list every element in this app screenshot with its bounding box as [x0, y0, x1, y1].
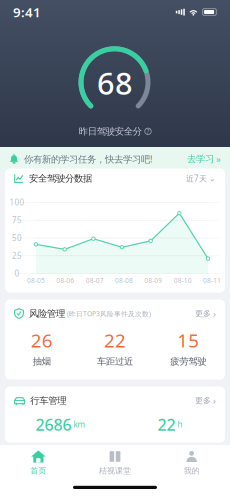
staticText: ›: [213, 307, 216, 320]
staticText: 22: [104, 328, 126, 353]
staticText: 2686: [35, 414, 71, 435]
button[interactable]: 22: [78, 328, 152, 367]
staticText: 首页: [30, 466, 46, 476]
staticText: 车距过近: [97, 356, 133, 367]
staticText: 0: [14, 268, 19, 279]
staticText: 我的: [184, 466, 200, 476]
staticText: 100: [9, 197, 24, 208]
staticText: 桔视课堂: [99, 466, 131, 476]
staticText: 近7天: [186, 173, 207, 184]
staticText: 抽烟: [33, 356, 51, 367]
staticText: (昨日TOP3风险事件及次数): [67, 309, 151, 318]
staticText: 你有新的学习任务，快去学习吧!: [24, 153, 153, 165]
staticText: 08-07: [86, 276, 104, 285]
staticText: 9:41: [13, 3, 41, 21]
button[interactable]: 15: [152, 328, 225, 367]
staticText: 08-11: [203, 276, 221, 285]
button[interactable]: 首页: [0, 450, 77, 476]
staticText: 08-10: [174, 276, 192, 285]
staticText: ⌄: [209, 174, 216, 183]
button[interactable]: 你有新的学习任务，快去学习吧!: [0, 147, 230, 171]
staticText: h: [177, 419, 182, 430]
staticText: ›: [213, 394, 216, 407]
staticText: km: [73, 419, 84, 430]
staticText: 26: [31, 328, 53, 353]
button[interactable]: 更多: [195, 307, 216, 320]
staticText: 08-08: [115, 276, 133, 285]
staticText: 更多: [195, 396, 211, 406]
button[interactable]: 26: [5, 328, 78, 367]
button[interactable]: 近7天: [186, 173, 216, 184]
staticText: 风险管理: [29, 308, 65, 319]
staticText: 15: [177, 328, 199, 353]
button[interactable]: 更多: [195, 394, 216, 407]
staticText: 去学习: [187, 153, 214, 165]
staticText: 昨日驾驶安全分: [79, 125, 142, 137]
staticText: 安全驾驶分数据: [29, 173, 92, 184]
staticText: 08-05: [27, 276, 45, 285]
staticText: 行车管理: [30, 395, 66, 406]
staticText: 更多: [195, 309, 211, 319]
staticText: 08-06: [56, 276, 74, 285]
staticText: 68: [97, 62, 133, 103]
staticText: 22: [157, 414, 175, 435]
staticText: 50: [12, 233, 22, 243]
staticText: 25: [12, 250, 22, 261]
staticText: ?: [146, 127, 149, 136]
staticText: 疲劳驾驶: [170, 356, 206, 367]
button[interactable]: 我的: [153, 450, 230, 476]
button[interactable]: 桔视课堂: [77, 450, 153, 476]
staticText: 75: [12, 215, 22, 225]
staticText: »: [216, 153, 221, 165]
staticText: 08-09: [144, 276, 162, 285]
